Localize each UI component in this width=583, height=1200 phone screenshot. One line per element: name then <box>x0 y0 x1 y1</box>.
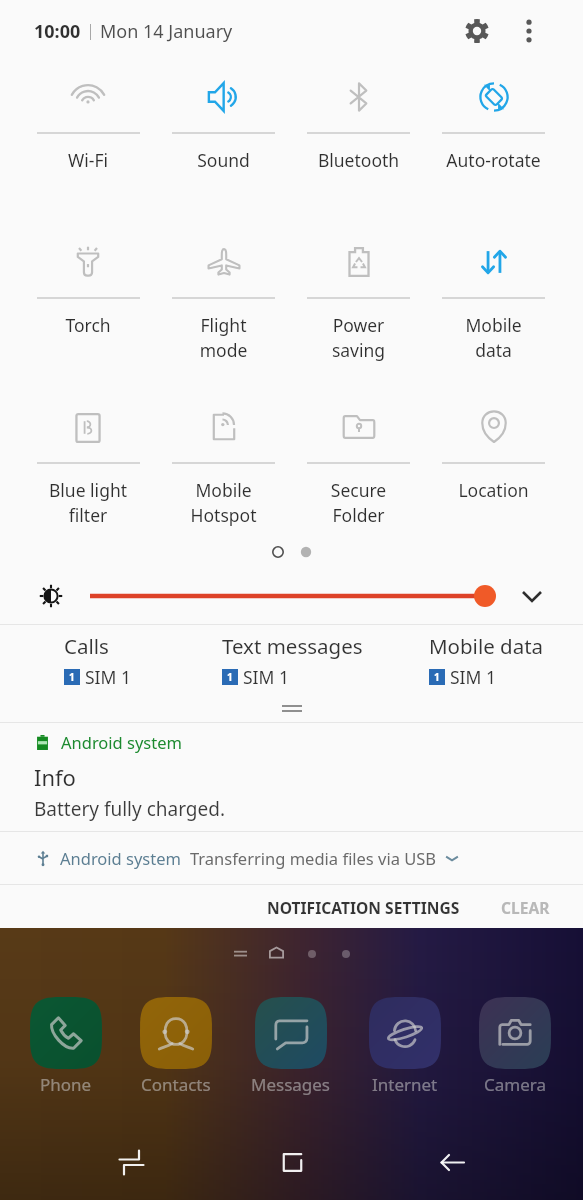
button[interactable]: Mobile data <box>426 227 561 392</box>
staticText: Mobile Hotspot <box>156 478 291 527</box>
button[interactable]: Recents <box>101 1132 161 1192</box>
button[interactable]: Mobile Hotspot <box>156 392 291 537</box>
button[interactable]: Blue light filter <box>20 392 156 537</box>
staticText: Mobile data <box>426 313 561 362</box>
staticText: Sound <box>156 148 291 172</box>
button[interactable]: Brightness <box>89 581 496 611</box>
button[interactable]: Expand <box>512 576 552 616</box>
staticText: 1 <box>434 670 440 684</box>
button[interactable]: Android system <box>0 832 583 884</box>
staticText: Wi-Fi <box>20 148 156 172</box>
staticText: Auto-rotate <box>426 148 561 172</box>
button[interactable]: Phone <box>30 997 102 1096</box>
staticText: Phone <box>40 1073 92 1096</box>
staticText: Internet <box>372 1073 438 1096</box>
button[interactable]: NOTIFICATION SETTINGS <box>249 885 480 928</box>
staticText: Mobile data <box>429 632 544 660</box>
button[interactable]: Text messages <box>195 625 389 695</box>
staticText: Bluetooth <box>291 148 426 172</box>
staticText: Text messages <box>222 632 363 660</box>
staticText: SIM 1 <box>243 665 289 689</box>
staticText: SIM 1 <box>85 665 131 689</box>
staticText: Info <box>34 762 76 792</box>
button[interactable]: Power saving <box>291 227 426 392</box>
staticText: CLEAR <box>501 897 550 916</box>
staticText: Torch <box>20 313 156 337</box>
button[interactable]: Messages <box>251 997 331 1096</box>
staticText: Contacts <box>141 1073 211 1096</box>
button[interactable]: Flight mode <box>156 227 291 392</box>
staticText: Camera <box>484 1073 546 1096</box>
button[interactable]: More options <box>505 7 553 55</box>
staticText: Android system <box>61 731 182 753</box>
staticText: Blue light filter <box>20 478 156 527</box>
button[interactable]: Home <box>262 1132 322 1192</box>
staticText: 1 <box>69 670 75 684</box>
staticText: Messages <box>251 1073 331 1096</box>
button[interactable]: CLEAR <box>480 885 583 928</box>
button[interactable]: Auto-rotate <box>426 62 561 227</box>
button[interactable]: Camera <box>479 997 551 1096</box>
button[interactable]: Bluetooth <box>291 62 426 227</box>
button[interactable]: Wi-Fi <box>20 62 156 227</box>
staticText: NOTIFICATION SETTINGS <box>267 897 460 916</box>
button[interactable]: Calls <box>0 625 195 695</box>
staticText: Android system <box>60 847 181 869</box>
staticText: Secure Folder <box>291 478 426 527</box>
button[interactable]: Android system <box>0 723 583 831</box>
button[interactable]: Back <box>422 1132 482 1192</box>
button[interactable]: Torch <box>20 227 156 392</box>
staticText: Location <box>426 478 561 502</box>
staticText: Mon 14 January <box>100 19 233 44</box>
staticText: Power saving <box>291 313 426 362</box>
button[interactable]: Mobile data <box>389 625 583 695</box>
staticText: 1 <box>227 670 233 684</box>
staticText: SIM 1 <box>450 665 496 689</box>
button[interactable]: Location <box>426 392 561 537</box>
button[interactable]: Settings <box>453 7 501 55</box>
staticText: Calls <box>64 632 109 660</box>
staticText: Flight mode <box>156 313 291 362</box>
staticText: Transferring media files via USB <box>190 847 437 869</box>
button[interactable]: Secure Folder <box>291 392 426 537</box>
staticText: 10:00 <box>34 19 81 44</box>
button[interactable]: Internet <box>369 997 441 1096</box>
button[interactable]: Sound <box>156 62 291 227</box>
staticText: Battery fully charged. <box>34 796 225 822</box>
button[interactable]: Contacts <box>140 997 212 1096</box>
